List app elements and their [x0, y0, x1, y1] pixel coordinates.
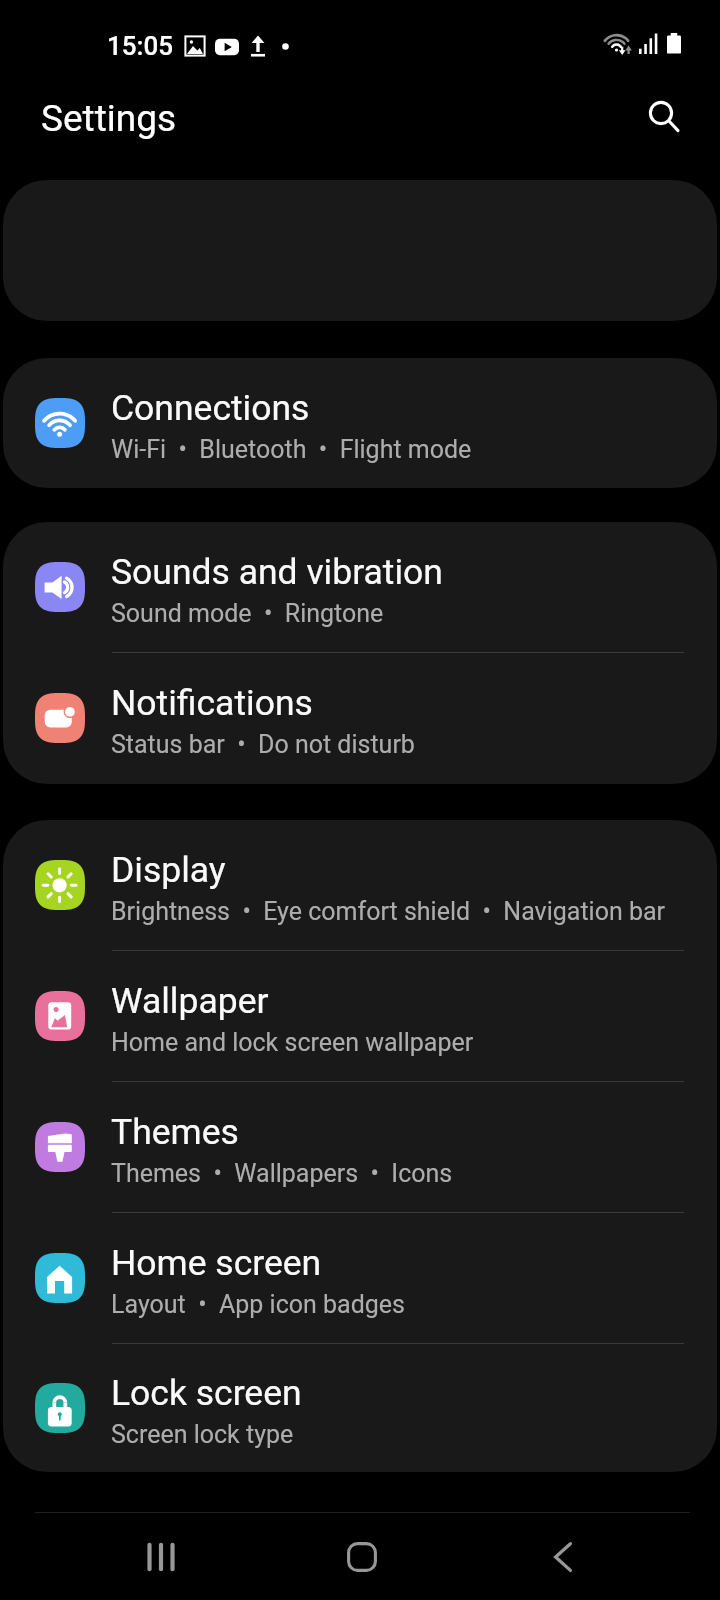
button[interactable]: Display: [3, 820, 717, 950]
staticText: Display: [111, 849, 226, 891]
button[interactable]: Home: [307, 1512, 417, 1600]
staticText: Sound mode • Ringtone: [111, 599, 384, 628]
button[interactable]: Home screen: [3, 1213, 717, 1343]
staticText: Connections: [111, 387, 310, 429]
button[interactable]: Recent apps: [106, 1512, 216, 1600]
button[interactable]: Wallpaper: [3, 951, 717, 1081]
staticText: 15:05: [107, 31, 174, 61]
staticText: Sounds and vibration: [111, 551, 443, 593]
staticText: Layout • App icon badges: [111, 1290, 405, 1319]
staticText: Screen lock type: [111, 1420, 294, 1449]
staticText: Wi-Fi • Bluetooth • Flight mode: [111, 435, 472, 464]
staticText: Wallpaper: [111, 980, 269, 1022]
staticText: Home screen: [111, 1242, 322, 1284]
button[interactable]: Search: [636, 88, 694, 146]
staticText: Status bar • Do not disturb: [111, 730, 415, 759]
button[interactable]: Sounds and vibration: [3, 522, 717, 652]
staticText: Brightness • Eye comfort shield • Naviga…: [111, 897, 666, 926]
staticText: Home and lock screen wallpaper: [111, 1028, 474, 1057]
staticText: Themes • Wallpapers • Icons: [111, 1159, 453, 1188]
staticText: Notifications: [111, 682, 313, 724]
button[interactable]: Lock screen: [3, 1344, 717, 1472]
button[interactable]: Notifications: [3, 653, 717, 783]
staticText: Settings: [41, 97, 177, 140]
staticText: Lock screen: [111, 1372, 302, 1414]
button[interactable]: Connections: [3, 358, 717, 488]
button[interactable]: Back: [508, 1512, 618, 1600]
staticText: Themes: [111, 1111, 239, 1153]
button[interactable]: Themes: [3, 1082, 717, 1212]
